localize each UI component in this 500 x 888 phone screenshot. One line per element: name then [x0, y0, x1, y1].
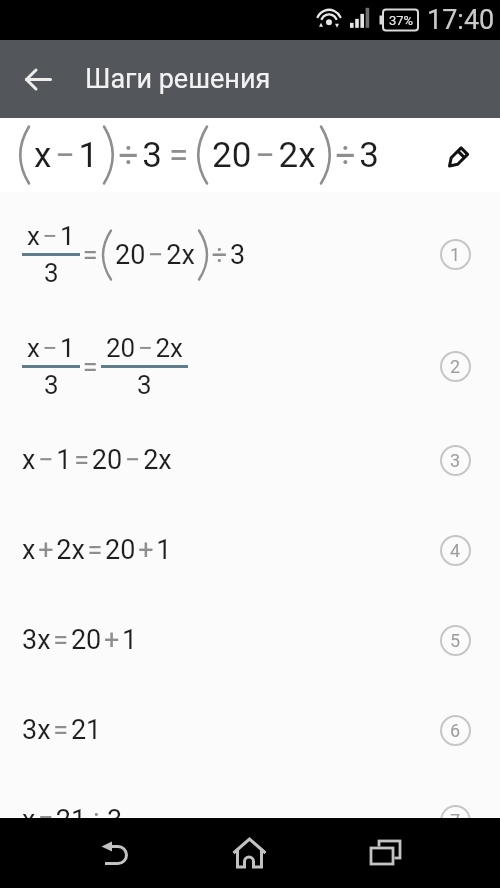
- staticText: 7: [450, 810, 461, 818]
- staticText: ÷ 3: [209, 239, 246, 271]
- staticText: ÷ 3 =: [115, 135, 196, 176]
- staticText: x − 1: [27, 221, 75, 251]
- staticText: x − 1: [34, 135, 99, 176]
- staticText: x = 21 ÷ 3: [22, 804, 123, 818]
- staticText: =: [80, 239, 101, 271]
- staticText: 2: [450, 356, 461, 377]
- staticText: =: [80, 351, 101, 383]
- staticText: 6: [450, 720, 461, 741]
- staticText: 17:40: [427, 4, 495, 36]
- staticText: 3x = 21: [22, 714, 102, 746]
- staticText: 1: [450, 244, 461, 265]
- staticText: 3: [137, 370, 152, 400]
- staticText: 5: [450, 630, 461, 651]
- staticText: ÷ 3: [332, 135, 379, 176]
- staticText: 37%: [389, 13, 414, 28]
- staticText: 3: [450, 450, 461, 471]
- staticText: x − 1: [27, 333, 75, 363]
- staticText: 3: [44, 258, 59, 288]
- staticText: 20 − 2x: [106, 333, 183, 363]
- staticText: 20 − 2x: [115, 239, 195, 271]
- staticText: 4: [450, 540, 461, 561]
- staticText: x + 2x = 20 + 1: [22, 534, 172, 566]
- staticText: 3: [44, 370, 59, 400]
- staticText: 20 − 2x: [212, 135, 316, 176]
- staticText: x − 1 = 20 − 2x: [22, 444, 172, 476]
- staticText: 3x = 20 + 1: [22, 624, 138, 656]
- staticText: Шаги решения: [85, 63, 271, 95]
